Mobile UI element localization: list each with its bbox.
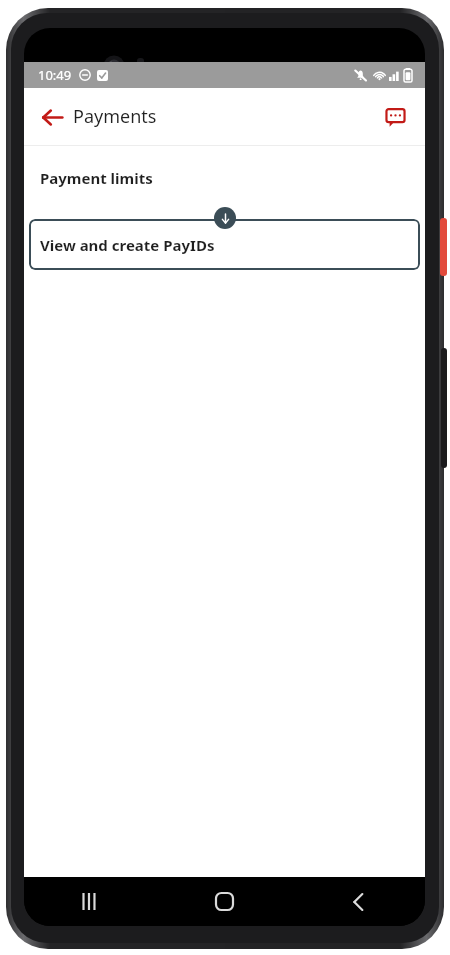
button[interactable]: Messages bbox=[373, 95, 417, 139]
staticText: 10:49 bbox=[38, 66, 72, 84]
button[interactable]: Recent apps bbox=[24, 877, 157, 926]
staticText: View and create PayIDs bbox=[40, 235, 215, 255]
staticText: Payment limits bbox=[40, 168, 153, 188]
button[interactable]: Expand bbox=[214, 207, 236, 229]
staticText: Payments bbox=[73, 104, 157, 129]
button[interactable]: Back bbox=[291, 877, 425, 926]
button[interactable]: Home bbox=[157, 877, 291, 926]
button[interactable]: Back bbox=[30, 95, 74, 139]
button[interactable]: View and create PayIDs bbox=[29, 219, 420, 270]
